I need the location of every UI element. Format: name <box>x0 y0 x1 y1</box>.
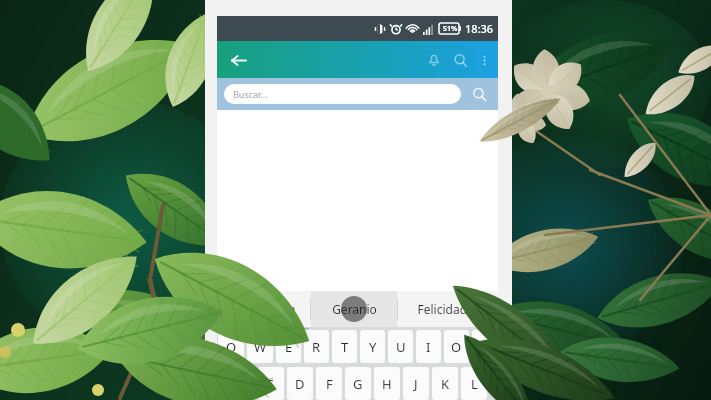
staticText: D <box>295 375 305 393</box>
button[interactable]: Y <box>360 330 385 363</box>
button[interactable]: Q <box>218 330 244 363</box>
button[interactable]: F <box>316 367 342 400</box>
button[interactable]: Geranio <box>311 291 397 327</box>
staticText: Felicidades <box>417 301 480 317</box>
button[interactable]: Search <box>467 82 491 106</box>
button[interactable]: Felicidades <box>398 291 498 327</box>
button[interactable]: G <box>345 367 371 400</box>
button[interactable]: Campanilla <box>217 291 310 327</box>
staticText: Y <box>369 338 377 356</box>
staticText: R <box>312 338 321 356</box>
staticText: S <box>267 375 275 393</box>
staticText: O <box>451 338 462 356</box>
button[interactable]: E <box>276 330 301 363</box>
staticText: 51% <box>443 24 458 34</box>
staticText: J <box>414 375 418 393</box>
button[interactable]: K <box>432 367 458 400</box>
button[interactable]: Back <box>223 45 253 75</box>
staticText: K <box>441 375 450 393</box>
button[interactable]: Search <box>447 47 473 73</box>
staticText: A <box>237 375 246 393</box>
button[interactable]: More options <box>473 49 495 71</box>
staticText: I <box>426 338 431 356</box>
button[interactable]: T <box>332 330 357 363</box>
staticText: U <box>396 338 406 356</box>
staticText: W <box>254 338 267 356</box>
button[interactable]: R <box>304 330 329 363</box>
staticText: Buscar... <box>233 88 268 100</box>
button[interactable]: U <box>388 330 413 363</box>
button[interactable]: P <box>472 330 497 363</box>
button[interactable]: S <box>258 367 284 400</box>
button[interactable]: H <box>374 367 400 400</box>
button[interactable]: Buscar... <box>224 84 461 104</box>
staticText: H <box>382 375 392 393</box>
staticText: T <box>341 338 349 356</box>
button[interactable]: L <box>461 367 487 400</box>
button[interactable]: O <box>444 330 469 363</box>
staticText: F <box>326 375 333 393</box>
staticText: 18:36 <box>465 21 494 36</box>
staticText: P <box>481 338 489 356</box>
button[interactable]: W <box>247 330 273 363</box>
button[interactable]: I <box>416 330 441 363</box>
staticText: E <box>285 338 293 356</box>
staticText: Q <box>226 338 237 356</box>
button[interactable]: Notifications <box>421 47 447 73</box>
staticText: L <box>471 375 478 393</box>
staticText: Campanilla <box>232 301 296 317</box>
button[interactable]: J <box>403 367 429 400</box>
button[interactable]: D <box>287 367 313 400</box>
staticText: Geranio <box>332 301 377 317</box>
button[interactable]: A <box>228 367 255 400</box>
staticText: G <box>353 375 363 393</box>
